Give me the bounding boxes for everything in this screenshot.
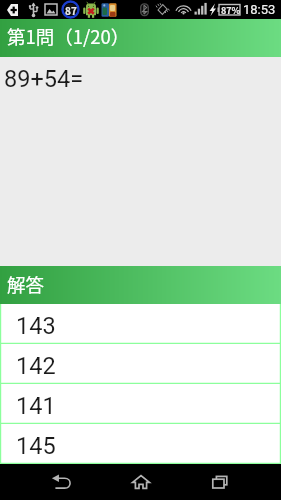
staticText: 141: [16, 392, 56, 420]
staticText: 第1問（1/20）: [7, 23, 130, 50]
staticText: 18:53: [243, 2, 276, 17]
staticText: 87: [65, 3, 77, 17]
staticText: 解答: [7, 271, 45, 298]
button[interactable]: 142: [0, 344, 281, 384]
button[interactable]: Home: [124, 465, 158, 499]
button[interactable]: Back: [45, 465, 79, 499]
staticText: 142: [16, 352, 56, 380]
staticText: 143: [16, 312, 56, 340]
button[interactable]: 141: [0, 384, 281, 424]
button[interactable]: 145: [0, 424, 281, 464]
staticText: 145: [16, 432, 56, 460]
button[interactable]: Recents: [203, 465, 237, 499]
button[interactable]: 143: [0, 304, 281, 344]
staticText: 89+54=: [4, 65, 84, 93]
staticText: 87%: [221, 4, 241, 17]
